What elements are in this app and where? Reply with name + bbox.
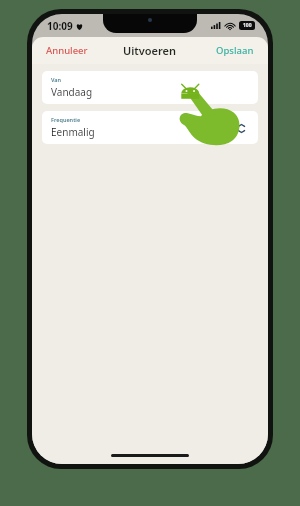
button[interactable]: Opslaan [202,39,268,62]
button[interactable]: Annuleer [32,39,102,62]
staticText: 10:09 [47,19,73,33]
staticText: Vandaag [51,85,93,99]
button[interactable]: Frequentie [42,111,258,144]
staticText: Frequentie [51,116,81,123]
staticText: Opslaan [216,44,254,57]
other: Tap here [176,84,238,146]
staticText: Annuleer [46,44,88,57]
staticText: Eenmalig [51,125,95,139]
button[interactable]: Change frequency [234,121,248,135]
button[interactable]: Van [42,71,258,104]
staticText: Van [51,76,62,83]
staticText: 100 [243,22,252,29]
staticText: Uitvoeren [123,43,177,58]
